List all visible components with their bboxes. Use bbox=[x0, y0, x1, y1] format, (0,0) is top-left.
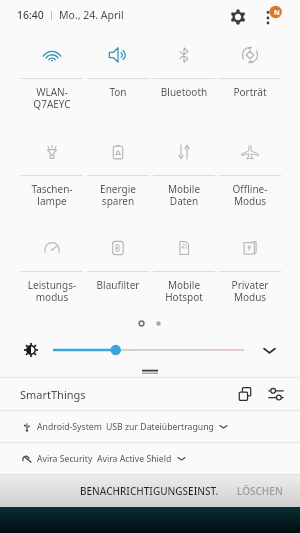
button[interactable]: BENACHRICHTIGUNGSEINST. bbox=[75, 478, 224, 504]
staticText: N bbox=[274, 8, 280, 18]
staticText: Avira Active Shield bbox=[97, 453, 172, 465]
staticText: Energie sparen bbox=[85, 182, 151, 208]
button[interactable]: Avira Security bbox=[0, 443, 300, 474]
staticText: Taschen- lampe bbox=[19, 182, 85, 208]
button[interactable]: Porträt bbox=[217, 39, 283, 99]
staticText: Blaufilter bbox=[85, 278, 151, 292]
button[interactable]: Expand quick settings bbox=[258, 341, 280, 359]
staticText: Mobile Hotspot bbox=[151, 278, 217, 304]
staticText: Leistungs- modus bbox=[19, 278, 85, 304]
staticText: BENACHRICHTIGUNGSEINST. bbox=[80, 484, 219, 498]
staticText: USB zur Dateiübertragung bbox=[106, 421, 214, 433]
staticText: Offline- Modus bbox=[217, 182, 283, 208]
button[interactable]: Mobile Hotspot bbox=[151, 232, 217, 304]
staticText: Mobile Daten bbox=[151, 182, 217, 208]
button[interactable]: Settings bbox=[228, 7, 248, 27]
staticText: Avira Security bbox=[37, 453, 93, 465]
staticText: Porträt bbox=[217, 85, 283, 99]
staticText: LÖSCHEN bbox=[237, 484, 283, 498]
button[interactable]: LÖSCHEN bbox=[232, 478, 288, 504]
button[interactable]: Leistungs- modus bbox=[19, 232, 85, 304]
staticText: WLAN- Q7AEYC bbox=[19, 85, 85, 111]
staticText: SmartThings bbox=[20, 387, 86, 402]
staticText: Android-System bbox=[37, 421, 102, 433]
button[interactable]: Offline- Modus bbox=[217, 136, 283, 208]
button[interactable]: SmartThings settings bbox=[264, 382, 288, 406]
button[interactable]: Mobile Daten bbox=[151, 136, 217, 208]
button[interactable]: Energie sparen bbox=[85, 136, 151, 208]
button[interactable]: Devices bbox=[233, 382, 257, 406]
button[interactable]: Privater Modus bbox=[217, 232, 283, 304]
button[interactable]: SmartThings bbox=[0, 378, 300, 410]
button[interactable]: WLAN- Q7AEYC bbox=[19, 39, 85, 111]
button[interactable]: Android-System bbox=[0, 411, 300, 442]
button[interactable]: More options bbox=[260, 2, 284, 26]
staticText: Privater Modus bbox=[217, 278, 283, 304]
staticText: Ton bbox=[85, 85, 151, 99]
staticText: 16:40 bbox=[17, 8, 44, 22]
button[interactable]: Bluetooth bbox=[151, 39, 217, 99]
button[interactable]: Blaufilter bbox=[85, 232, 151, 292]
button[interactable]: Taschen- lampe bbox=[19, 136, 85, 208]
staticText: Mo., 24. April bbox=[59, 8, 124, 22]
button[interactable]: Ton bbox=[85, 39, 151, 99]
staticText: Bluetooth bbox=[151, 85, 217, 99]
